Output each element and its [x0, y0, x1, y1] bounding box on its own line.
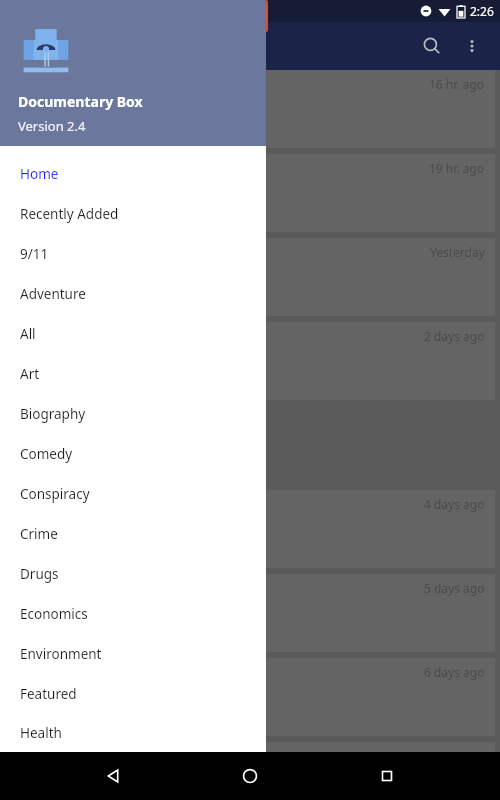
staticText: Economics	[20, 605, 88, 623]
button[interactable]: Health	[0, 714, 266, 752]
button[interactable]: 9/11	[0, 234, 266, 274]
button[interactable]: More options	[452, 26, 492, 66]
button[interactable]: Economics	[0, 594, 266, 634]
button[interactable]: Google Plus	[236, 0, 268, 32]
button[interactable]: All	[0, 314, 266, 354]
button[interactable]: 4 days ago	[5, 490, 495, 568]
button[interactable]: Home	[0, 154, 266, 194]
staticText: 19 hr. ago	[429, 160, 485, 176]
button[interactable]: Conspiracy	[0, 474, 266, 514]
button[interactable]: Recently Added	[0, 194, 266, 234]
button[interactable]: Recent apps	[363, 752, 411, 800]
button[interactable]: Comedy	[0, 434, 266, 474]
button[interactable]: Featured	[0, 674, 266, 714]
staticText: Documentary Box	[18, 92, 143, 111]
staticText: Comedy	[20, 445, 73, 463]
button[interactable]: Crime	[0, 514, 266, 554]
button[interactable]: Close ad	[25, 406, 40, 421]
staticText: Featured	[20, 685, 77, 703]
staticText: Adventure	[20, 285, 86, 303]
staticText: 6 days ago	[424, 748, 485, 764]
staticText: Conspiracy	[20, 485, 90, 503]
staticText: Environment	[20, 645, 102, 663]
button[interactable]: Home	[226, 752, 274, 800]
staticText: Home	[20, 165, 59, 183]
staticText: 2 days ago	[424, 328, 485, 344]
button[interactable]: 5 days ago	[5, 574, 495, 652]
button[interactable]: 16 hr. ago	[5, 70, 495, 148]
staticText: Biography	[20, 405, 86, 423]
button[interactable]: Adventure	[0, 274, 266, 314]
button[interactable]: 2 days ago	[5, 322, 495, 400]
button[interactable]: Environment	[0, 634, 266, 674]
button[interactable]: Yesterday	[5, 238, 495, 316]
button[interactable]: Ad info	[8, 406, 23, 421]
button[interactable]: Back	[89, 752, 137, 800]
staticText: 5 days ago	[424, 580, 485, 596]
button[interactable]: Search	[412, 26, 452, 66]
staticText: All	[20, 325, 36, 343]
button[interactable]: 6 days ago	[5, 658, 495, 736]
staticText: 16 hr. ago	[429, 76, 485, 92]
staticText: 2:26	[470, 3, 494, 19]
staticText: 6 days ago	[424, 664, 485, 680]
button[interactable]: 6 days ago	[5, 742, 495, 800]
button[interactable]: Art	[0, 354, 266, 394]
button[interactable]: 19 hr. ago	[5, 154, 495, 232]
staticText: Health	[20, 724, 62, 742]
staticText: te	[20, 438, 33, 456]
staticText: Yesterday	[430, 244, 485, 260]
staticText: Crime	[20, 525, 58, 543]
button[interactable]: te	[0, 429, 95, 464]
staticText: 9/11	[20, 245, 49, 263]
staticText: 4 days ago	[424, 496, 485, 512]
staticText: Drugs	[20, 565, 59, 583]
button[interactable]: Drugs	[0, 554, 266, 594]
staticText: Version 2.4	[18, 117, 86, 135]
staticText: Art	[20, 365, 40, 383]
button[interactable]: Biography	[0, 394, 266, 434]
staticText: Recently Added	[20, 205, 119, 223]
